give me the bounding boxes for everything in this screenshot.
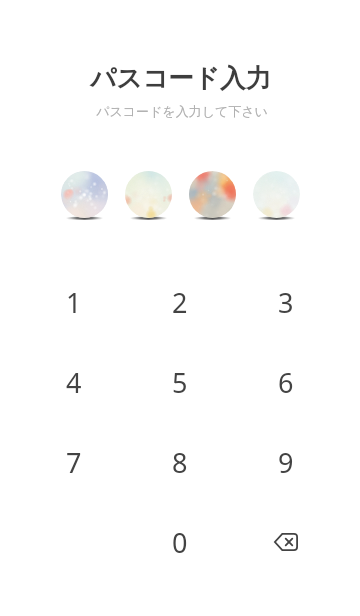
staticText: 6: [278, 364, 294, 401]
staticText: 2: [172, 284, 188, 321]
button[interactable]: 0: [127, 502, 233, 582]
button[interactable]: 6: [233, 342, 339, 422]
button[interactable]: 3: [233, 262, 339, 342]
staticText: 0: [172, 524, 188, 561]
staticText: パスコードを入力して下さい: [96, 103, 268, 119]
button[interactable]: 7: [21, 422, 127, 502]
staticText: パスコード入力: [90, 62, 271, 94]
button[interactable]: 9: [233, 422, 339, 502]
button[interactable]: 1: [21, 262, 127, 342]
button[interactable]: 8: [127, 422, 233, 502]
staticText: 8: [172, 444, 188, 481]
staticText: 4: [66, 364, 82, 401]
button[interactable]: 4: [21, 342, 127, 422]
staticText: 5: [172, 364, 188, 401]
button[interactable]: 2: [127, 262, 233, 342]
staticText: 1: [66, 284, 82, 321]
other: Backspace: [262, 518, 310, 566]
staticText: 9: [278, 444, 294, 481]
button[interactable]: Backspace: [233, 502, 339, 582]
button[interactable]: 5: [127, 342, 233, 422]
staticText: 7: [66, 444, 82, 481]
staticText: 3: [278, 284, 294, 321]
